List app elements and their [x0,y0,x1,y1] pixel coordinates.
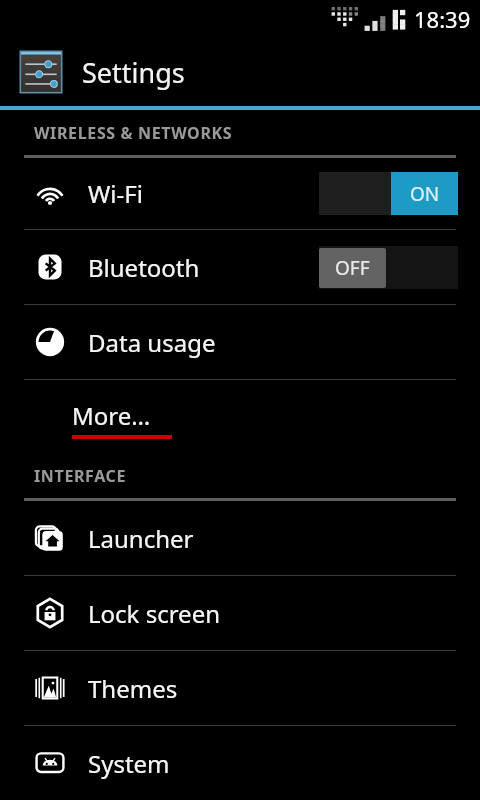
button[interactable]: Lock screen [0,576,480,650]
button[interactable]: More… [0,380,480,453]
button[interactable]: Bluetooth [0,230,480,304]
button[interactable]: System [0,726,480,800]
staticText: Bluetooth [88,251,200,284]
other: Themes [34,672,66,704]
staticText: Settings [82,54,185,91]
staticText: System [88,747,170,780]
staticText: More… [72,399,151,432]
staticText: 18:39 [414,4,471,34]
other: Data usage [34,326,66,358]
staticText: Lock screen [88,597,221,630]
other: Launcher [34,522,66,554]
other: Lock screen [34,597,66,629]
button[interactable]: Data usage [0,305,480,379]
other: Bluetooth [34,251,66,283]
staticText: OFF [335,255,370,281]
staticText: Themes [88,672,178,705]
staticText: Data usage [88,326,216,359]
button[interactable]: Themes [0,651,480,725]
button[interactable]: OFF [319,246,458,289]
other: System [34,747,66,779]
staticText: WIRELESS & NETWORKS [34,122,233,144]
other: Wi-Fi [34,178,66,210]
button[interactable]: Launcher [0,501,480,575]
staticText: ON [410,181,440,207]
button[interactable]: Wi-Fi [0,158,480,229]
button[interactable]: ON [319,172,458,215]
staticText: Launcher [88,522,194,555]
staticText: INTERFACE [34,465,127,487]
staticText: Wi-Fi [88,177,143,210]
